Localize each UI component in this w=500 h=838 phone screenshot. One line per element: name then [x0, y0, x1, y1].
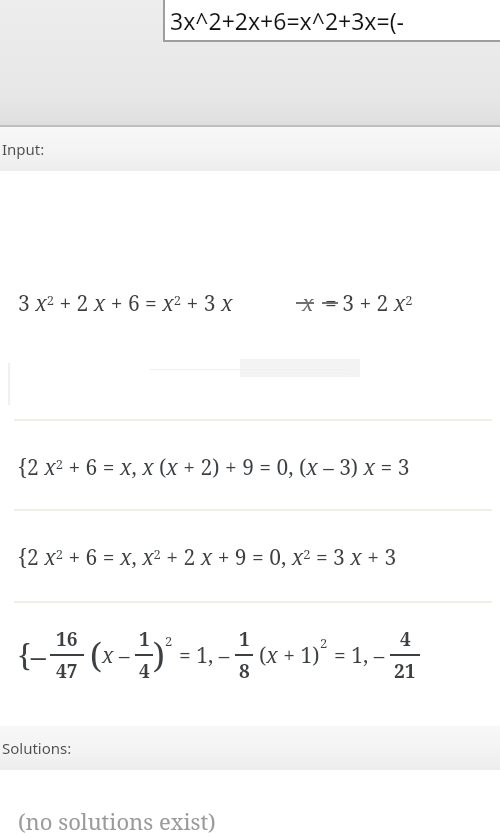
staticText: {2 x2 + 6 = x, x2 + 2 x + 9 = 0, x2 = 3 … — [18, 543, 397, 572]
staticText: 21 — [394, 658, 416, 684]
staticText: Input: — [2, 139, 45, 159]
button[interactable]: Input: — [0, 127, 500, 171]
staticText: 4 — [400, 626, 411, 652]
staticText: = 3 + 2 x2 — [325, 289, 413, 318]
staticText: = 1, – — [334, 641, 385, 670]
button[interactable]: Solutions: — [0, 726, 500, 770]
staticText: x – — [102, 641, 135, 670]
staticText: ( — [90, 632, 102, 678]
staticText: (no solutions exist) — [18, 806, 216, 836]
staticText: 8 — [239, 658, 250, 684]
staticText: 1 — [239, 626, 250, 652]
staticText: {– — [18, 635, 46, 676]
staticText: 1 — [139, 626, 150, 652]
staticText: 2 — [165, 632, 173, 650]
staticText: 3x^2+2x+6=x^2+3x=(- — [170, 5, 405, 36]
staticText: (x + 1) — [259, 641, 320, 670]
staticText: x — [302, 289, 319, 318]
staticText: 2 — [320, 634, 328, 652]
staticText: 3 x2 + 2 x + 6 = x2 + 3 x — [18, 289, 233, 318]
staticText: 4 — [139, 658, 150, 684]
button[interactable]: 3x^2+2x+6=x^2+3x=(- — [165, 0, 500, 40]
staticText: ) — [153, 632, 165, 678]
staticText: 47 — [56, 658, 78, 684]
staticText: {2 x2 + 6 = x, x (x + 2) + 9 = 0, (x – 3… — [18, 453, 410, 482]
staticText: = 1, – — [179, 641, 230, 670]
staticText: Solutions: — [2, 738, 72, 758]
staticText: 16 — [56, 626, 78, 652]
